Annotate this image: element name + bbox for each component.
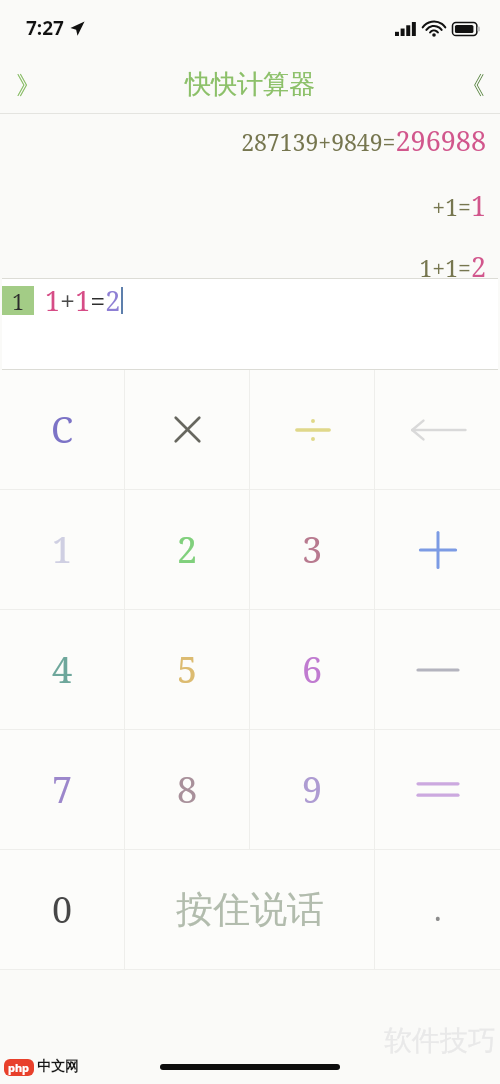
button[interactable]: +1=1: [432, 187, 486, 224]
button[interactable]: 按住说话: [125, 850, 375, 969]
staticText: 7: [52, 765, 73, 814]
staticText: 8: [177, 765, 198, 814]
staticText: 中文网: [37, 1058, 79, 1076]
staticText: 软件技巧: [384, 1023, 496, 1058]
button[interactable]: Equals: [375, 730, 500, 849]
staticText: 5: [177, 645, 198, 694]
button[interactable]: Back: [444, 57, 500, 113]
button[interactable]: 3: [250, 490, 375, 609]
staticText: 7:27: [26, 15, 64, 41]
button[interactable]: 1+1=2: [419, 248, 486, 278]
staticText: 1+1=2: [45, 282, 121, 319]
button[interactable]: Minus: [375, 610, 500, 729]
button[interactable]: 7: [0, 730, 125, 849]
button[interactable]: .: [375, 850, 500, 969]
staticText: 》: [16, 70, 41, 101]
button[interactable]: 287139+9849=296988: [241, 122, 486, 159]
staticText: 3: [302, 525, 323, 574]
staticText: php: [8, 1060, 30, 1075]
staticText: 1+1=2: [419, 248, 486, 278]
staticText: 1: [12, 286, 25, 315]
staticText: 0: [52, 885, 73, 934]
staticText: +1=1: [432, 187, 486, 224]
staticText: 6: [302, 645, 323, 694]
button[interactable]: 1: [0, 490, 125, 609]
staticText: C: [51, 405, 74, 454]
button[interactable]: 4: [0, 610, 125, 729]
staticText: 287139+9849=296988: [241, 122, 486, 159]
button[interactable]: C: [0, 370, 125, 489]
button[interactable]: Plus: [375, 490, 500, 609]
button[interactable]: Backspace: [375, 370, 500, 489]
button[interactable]: 8: [125, 730, 250, 849]
button[interactable]: 5: [125, 610, 250, 729]
button[interactable]: 1: [2, 278, 498, 370]
staticText: 按住说话: [176, 886, 324, 933]
button[interactable]: 0: [0, 850, 125, 969]
staticText: 9: [302, 765, 323, 814]
button[interactable]: 9: [250, 730, 375, 849]
button[interactable]: 6: [250, 610, 375, 729]
button[interactable]: Multiply: [125, 370, 250, 489]
staticText: 快快计算器: [185, 68, 315, 101]
staticText: 1: [52, 525, 73, 574]
staticText: 4: [52, 645, 73, 694]
button[interactable]: 2: [125, 490, 250, 609]
button[interactable]: Divide: [250, 370, 375, 489]
staticText: .: [434, 889, 442, 930]
button[interactable]: Menu: [0, 57, 56, 113]
staticText: 《: [460, 70, 485, 101]
staticText: 2: [177, 525, 198, 574]
